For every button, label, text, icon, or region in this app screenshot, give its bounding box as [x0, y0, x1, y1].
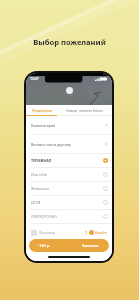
button[interactable]: Животные: [26, 182, 112, 195]
staticText: 13:47: [30, 76, 39, 81]
staticText: 1: [85, 230, 88, 235]
staticText: ДЕТИ: [31, 200, 41, 205]
staticText: Кэшбэк: [95, 231, 107, 235]
staticText: ~140 р.: [37, 243, 51, 248]
staticText: Промокод: [39, 231, 55, 235]
button[interactable]: ТЕРМИНАЛ: [26, 154, 112, 167]
staticText: Комментарий: [31, 123, 56, 128]
button[interactable]: Вызвать такси другому: [26, 135, 112, 153]
staticText: Выбор пожеланий: [33, 37, 106, 47]
button[interactable]: СВЕРХСРОЧНО: [26, 210, 112, 223]
button[interactable]: Комментарий: [26, 116, 112, 134]
button[interactable]: Ножки, нижнее белье: [57, 105, 112, 115]
staticText: Для себя: [31, 172, 47, 177]
staticText: Пожелания: [32, 108, 52, 113]
button[interactable]: Пожелания: [26, 105, 57, 115]
staticText: СВЕРХСРОЧНО: [31, 214, 57, 219]
staticText: Животные: [31, 186, 50, 191]
button[interactable]: ДЕТИ: [26, 196, 112, 209]
button[interactable]: 1: [85, 230, 107, 235]
staticText: Вызвать такси другому: [31, 142, 72, 147]
staticText: ТЕРМИНАЛ: [31, 158, 52, 163]
staticText: Ножки, нижнее белье: [66, 108, 103, 113]
button[interactable]: ~140 р.: [29, 239, 109, 252]
staticText: Заказать: [82, 243, 99, 248]
button[interactable]: Для себя: [26, 168, 112, 181]
